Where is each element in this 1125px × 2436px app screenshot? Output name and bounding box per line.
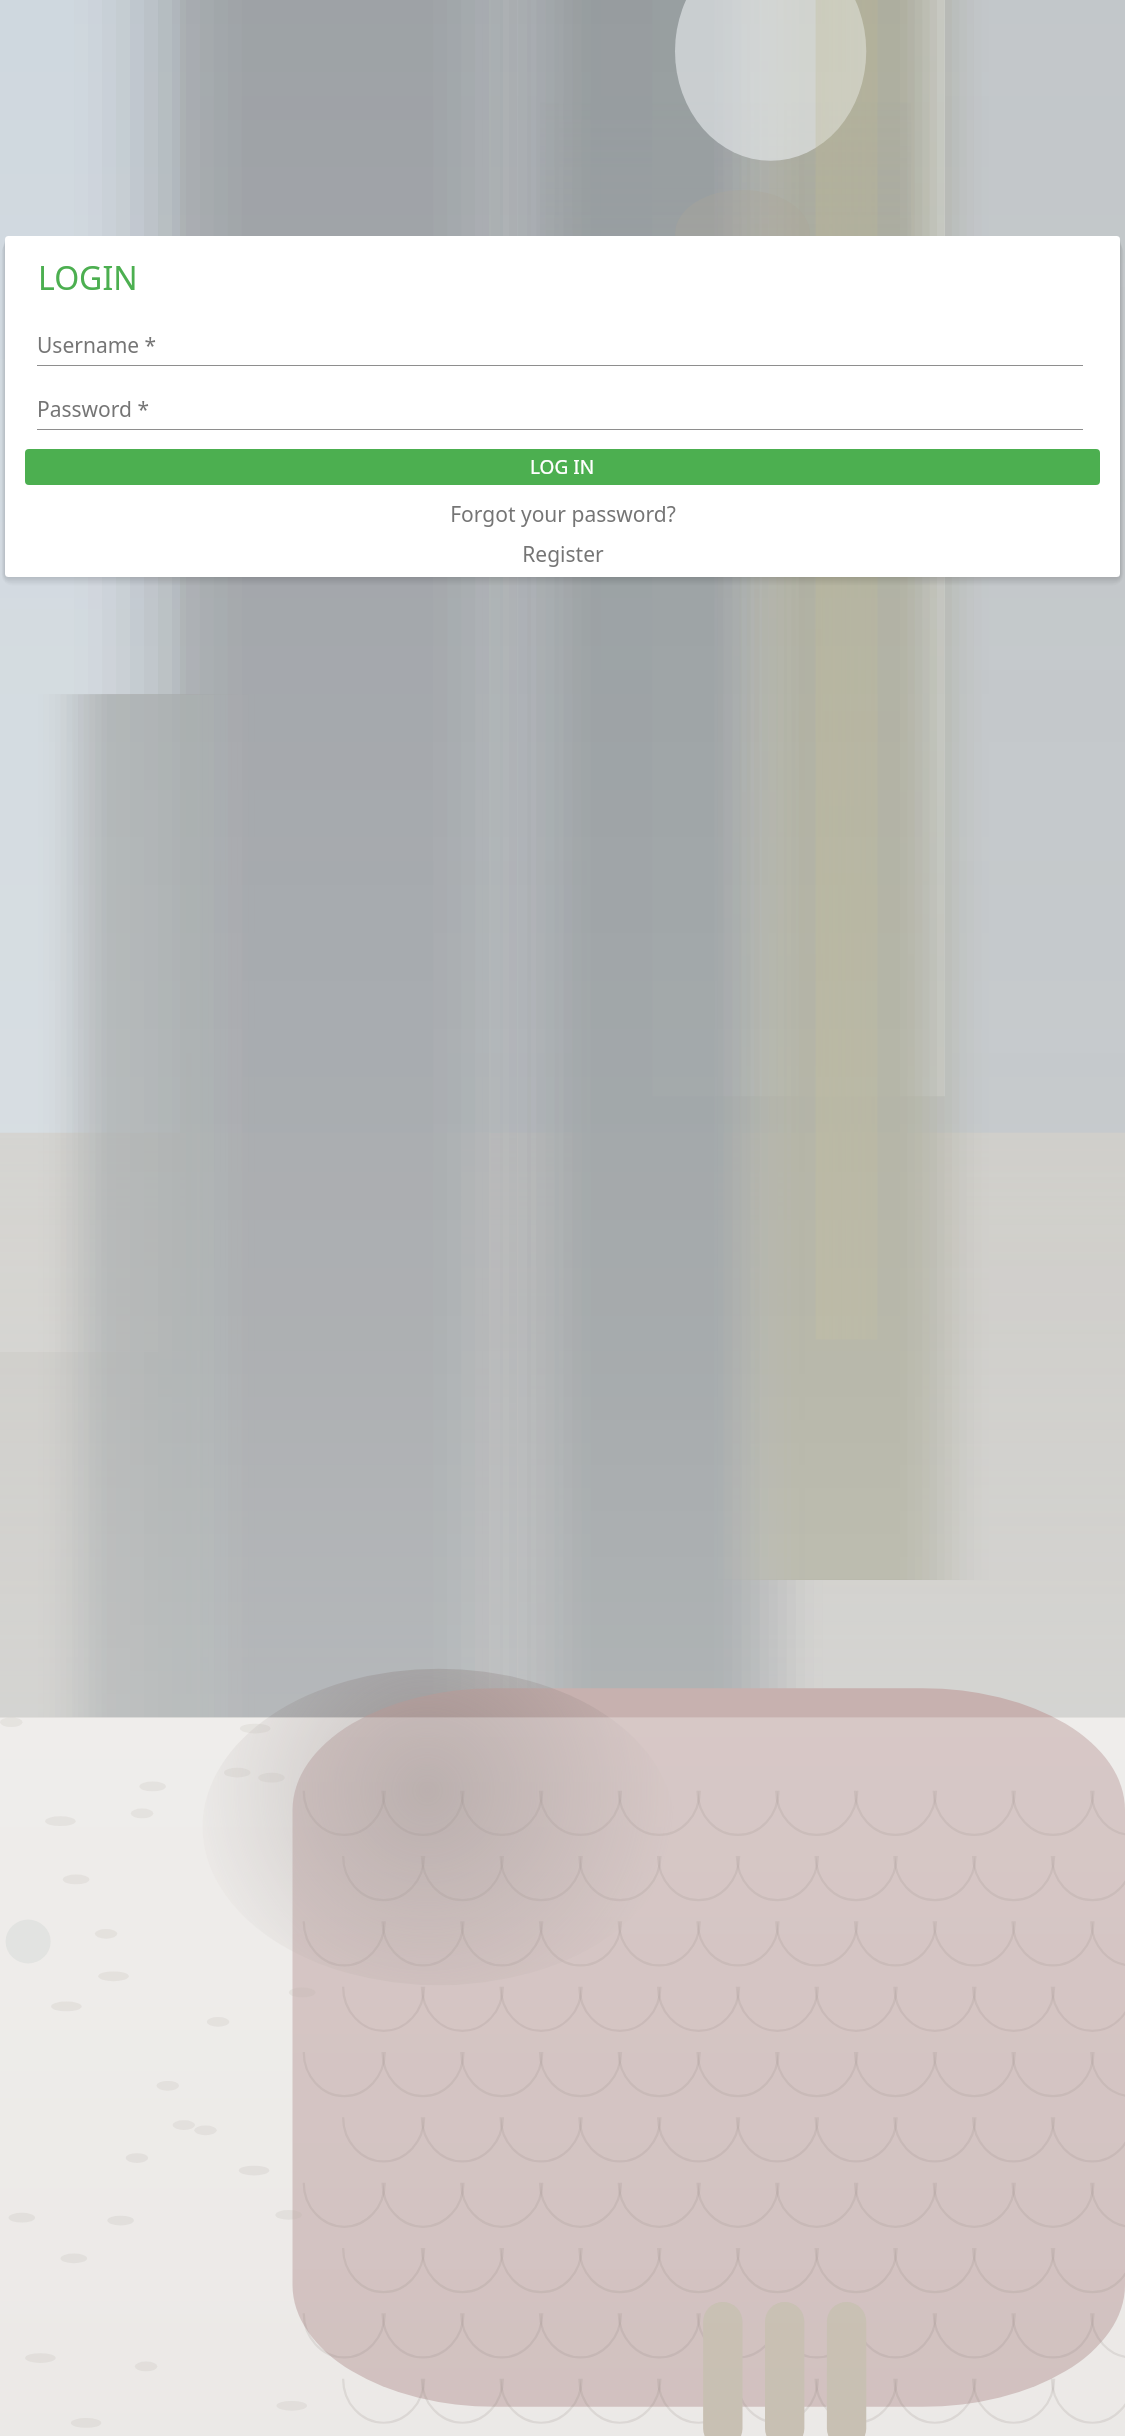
staticText: Register xyxy=(522,540,604,569)
button[interactable]: Password * xyxy=(37,395,1083,430)
button[interactable]: Forgot your password? xyxy=(5,498,1120,530)
staticText: Password * xyxy=(37,395,150,424)
button[interactable]: LOG IN xyxy=(25,449,1100,485)
button[interactable]: Username * xyxy=(37,331,1083,366)
button[interactable]: Register xyxy=(5,538,1120,570)
staticText: LOGIN xyxy=(38,256,138,300)
staticText: Username * xyxy=(37,331,157,360)
staticText: Forgot your password? xyxy=(450,500,676,529)
staticText: LOG IN xyxy=(530,454,595,480)
